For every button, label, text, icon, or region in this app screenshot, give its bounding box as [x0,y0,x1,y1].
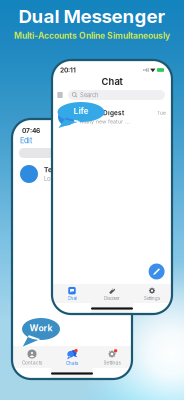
staticText: Chat [101,76,122,87]
staticText: Edit [20,136,32,145]
button[interactable]: Settings [132,287,172,301]
button[interactable]: Chat [52,287,92,301]
staticText: Search [80,91,98,99]
staticText: Settings [103,360,120,365]
staticText: Chats [66,360,78,366]
button[interactable]: Compose [149,263,165,279]
button[interactable]: Settings [92,349,132,365]
staticText: Chat [67,296,76,301]
button[interactable]: Web A Digest [52,107,172,127]
staticText: 07:46 [22,126,40,135]
staticText: Discover [104,296,120,301]
staticText: 20:11 [60,66,76,74]
staticText: Login code [44,175,75,182]
staticText: Many new featur ... [80,118,131,125]
button[interactable]: Contacts [12,349,52,365]
staticText: Tue [157,110,166,116]
button[interactable]: Discover [92,287,132,301]
staticText: Dual Messenger [18,5,165,28]
button[interactable]: Edit [20,136,32,145]
staticText: Multi-Accounts Online Simultaneously [14,31,170,41]
staticText: Settings [144,296,160,301]
staticText: Work [29,323,52,333]
staticText: Contacts [22,360,42,365]
button[interactable]: Chats [52,349,92,366]
button[interactable]: Menu [57,90,63,99]
staticText: Telegram [44,166,75,174]
staticText: Web A Digest [80,109,124,117]
staticText: Life [73,106,88,116]
